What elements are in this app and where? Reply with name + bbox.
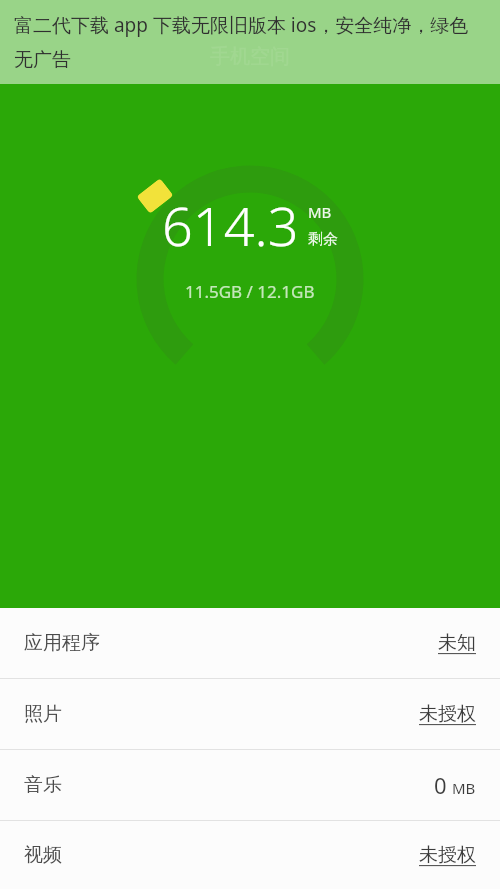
- staticText: 未授权: [419, 843, 476, 867]
- button[interactable]: 音乐: [0, 750, 500, 820]
- staticText: MB: [308, 202, 332, 222]
- staticText: 视频: [24, 843, 62, 867]
- staticText: 未授权: [419, 702, 476, 726]
- button[interactable]: 应用程序: [0, 608, 500, 678]
- staticText: 0: [434, 770, 447, 800]
- staticText: 614.3: [162, 188, 299, 262]
- staticText: 照片: [24, 702, 62, 726]
- staticText: 剩余: [308, 230, 338, 249]
- staticText: 手机空间: [210, 44, 290, 69]
- staticText: 11.5GB / 12.1GB: [185, 280, 315, 303]
- button[interactable]: 富二代下载 app 下载无限旧版本 ios，安全纯净，绿色无广告: [0, 0, 500, 84]
- button[interactable]: 照片: [0, 679, 500, 749]
- staticText: 音乐: [24, 773, 62, 797]
- staticText: 未知: [438, 631, 476, 655]
- staticText: 富二代下载 app 下载无限旧版本 ios，安全纯净，绿色无广告: [14, 12, 486, 72]
- button[interactable]: 视频: [0, 821, 500, 889]
- staticText: 应用程序: [24, 631, 100, 655]
- staticText: MB: [452, 778, 476, 798]
